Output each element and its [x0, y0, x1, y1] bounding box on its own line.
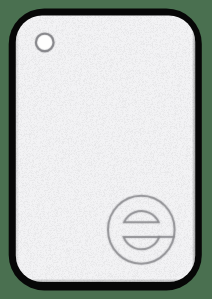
button[interactable]: eero key fob tag — [0, 0, 212, 299]
